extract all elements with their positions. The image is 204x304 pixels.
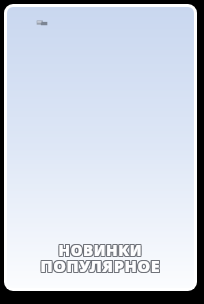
- button[interactable]: Новинки Популярное: [4, 4, 197, 291]
- button[interactable]: Thumbnail: [35, 16, 49, 30]
- button[interactable]: Thumbnail: [4, 4, 197, 291]
